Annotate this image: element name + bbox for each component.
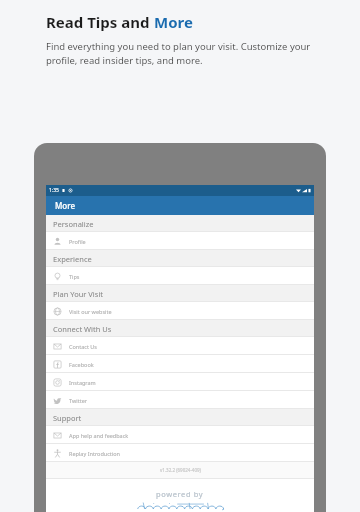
staticText: Instagram	[69, 379, 96, 386]
button[interactable]: Facebook	[46, 355, 314, 373]
staticText: Contact Us	[69, 343, 97, 350]
button[interactable]: Replay Introduction	[46, 444, 314, 462]
staticText: Visit our website	[69, 308, 112, 315]
staticText: Support	[53, 413, 82, 423]
button[interactable]: Profile	[46, 232, 314, 250]
staticText: More	[154, 12, 193, 32]
staticText: Replay Introduction	[69, 450, 120, 457]
staticText: App help and feedback	[69, 432, 129, 439]
staticText: 1:35	[49, 187, 59, 194]
staticText: Twitter	[69, 397, 88, 404]
staticText: Read Tips and	[46, 12, 154, 32]
button[interactable]: Instagram	[46, 373, 314, 391]
button[interactable]: Tips	[46, 267, 314, 285]
staticText: v1.32.2 (69024-409)	[160, 467, 201, 473]
staticText: Profile	[69, 238, 86, 245]
staticText: Facebook	[69, 361, 94, 368]
staticText: More	[55, 200, 76, 211]
staticText: Experience	[53, 254, 92, 264]
staticText: Find everything you need to plan your vi…	[46, 40, 311, 67]
button[interactable]: More	[46, 196, 314, 215]
staticText: Personalize	[53, 219, 94, 229]
button[interactable]: Twitter	[46, 391, 314, 409]
button[interactable]: Visit our website	[46, 302, 314, 320]
button[interactable]: Contact Us	[46, 337, 314, 355]
staticText: Plan Your Visit	[53, 289, 104, 299]
button[interactable]: App help and feedback	[46, 426, 314, 444]
staticText: powered by	[156, 489, 204, 499]
staticText: Tips	[69, 273, 80, 280]
staticText: Connect With Us	[53, 324, 112, 334]
